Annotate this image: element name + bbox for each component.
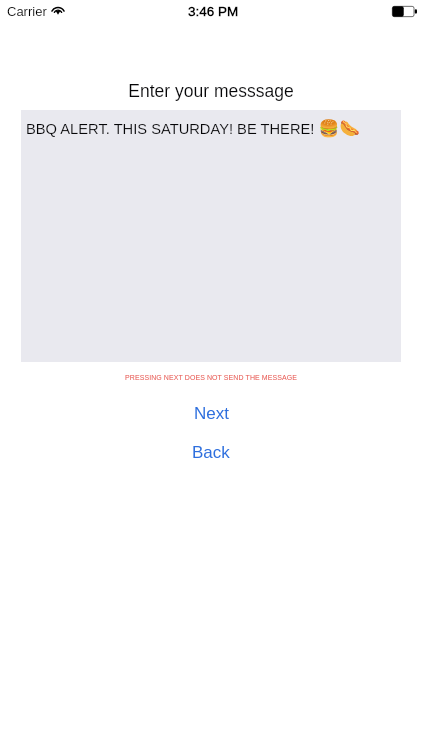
staticText: Enter your messsage <box>0 81 422 101</box>
staticText: Carrier <box>7 4 47 19</box>
button[interactable]: Next <box>0 399 422 427</box>
button[interactable]: Back <box>0 438 422 466</box>
staticText: BBQ ALERT. THIS SATURDAY! BE THERE! 🍔🌭 <box>26 119 360 138</box>
other: Battery level <box>392 6 417 17</box>
staticText: PRESSING NEXT DOES NOT SEND THE MESSAGE <box>0 374 422 382</box>
staticText: 3:46 PM <box>188 4 239 19</box>
button[interactable]: BBQ ALERT. THIS SATURDAY! BE THERE! 🍔🌭 <box>21 110 401 362</box>
staticText: Back <box>192 443 230 462</box>
other: Wi-Fi signal <box>51 4 65 14</box>
staticText: Next <box>194 404 229 423</box>
